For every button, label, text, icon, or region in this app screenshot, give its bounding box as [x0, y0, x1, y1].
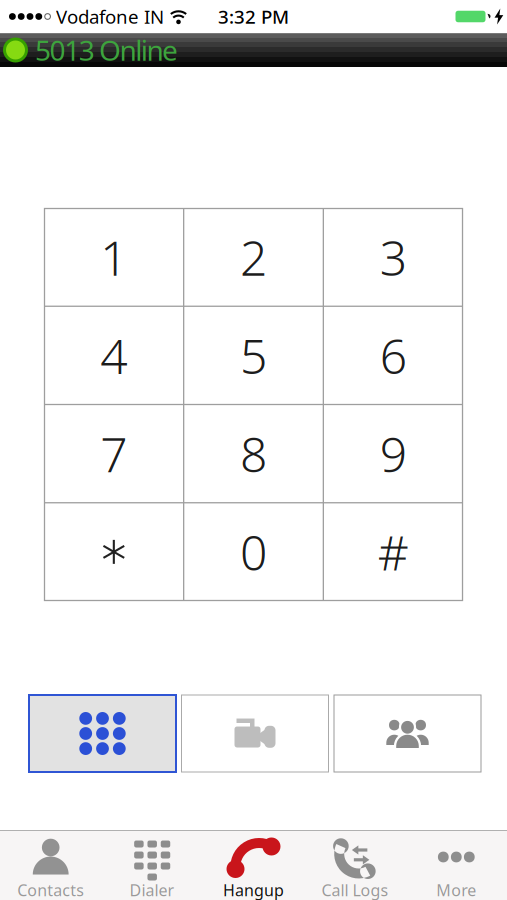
staticText: 3 [380, 225, 407, 289]
button[interactable]: 9 [323, 404, 463, 503]
button[interactable]: Contacts [0, 831, 101, 900]
button[interactable] [181, 695, 328, 772]
button[interactable]: 1 [44, 208, 184, 306]
button[interactable]: 7 [44, 404, 184, 503]
staticText: 5 [240, 323, 267, 387]
button[interactable]: 3 [323, 208, 463, 306]
staticText: 5013 Online [35, 31, 178, 69]
button[interactable]: 8 [184, 404, 323, 503]
staticText: 0 [240, 520, 267, 584]
button[interactable] [44, 503, 184, 601]
staticText: # [378, 520, 409, 584]
staticText: 3:32 PM [218, 4, 289, 29]
button[interactable]: 4 [44, 306, 184, 404]
staticText: 2 [240, 225, 267, 289]
button[interactable]: More [406, 831, 507, 900]
button[interactable]: Dialer [101, 831, 203, 900]
button[interactable]: Hangup [203, 831, 304, 900]
staticText: 9 [380, 422, 407, 485]
button[interactable] [334, 695, 481, 772]
staticText: 7 [100, 422, 127, 485]
button[interactable]: 2 [184, 208, 323, 306]
staticText: More [436, 879, 476, 900]
button[interactable]: 0 [184, 503, 323, 601]
staticText: Dialer [130, 879, 175, 900]
staticText: 4 [100, 323, 127, 387]
staticText: Contacts [17, 879, 84, 900]
staticText: 1 [100, 225, 127, 289]
staticText: 8 [240, 422, 267, 485]
staticText: Call Logs [321, 879, 388, 900]
staticText: Hangup [223, 879, 284, 900]
staticText: 6 [380, 323, 407, 387]
staticText: Vodafone IN [56, 4, 164, 29]
button[interactable]: 6 [323, 306, 463, 404]
button[interactable]: 5 [184, 306, 323, 404]
button[interactable]: Call Logs [304, 831, 406, 900]
button[interactable] [29, 695, 176, 772]
button[interactable]: # [323, 503, 463, 601]
